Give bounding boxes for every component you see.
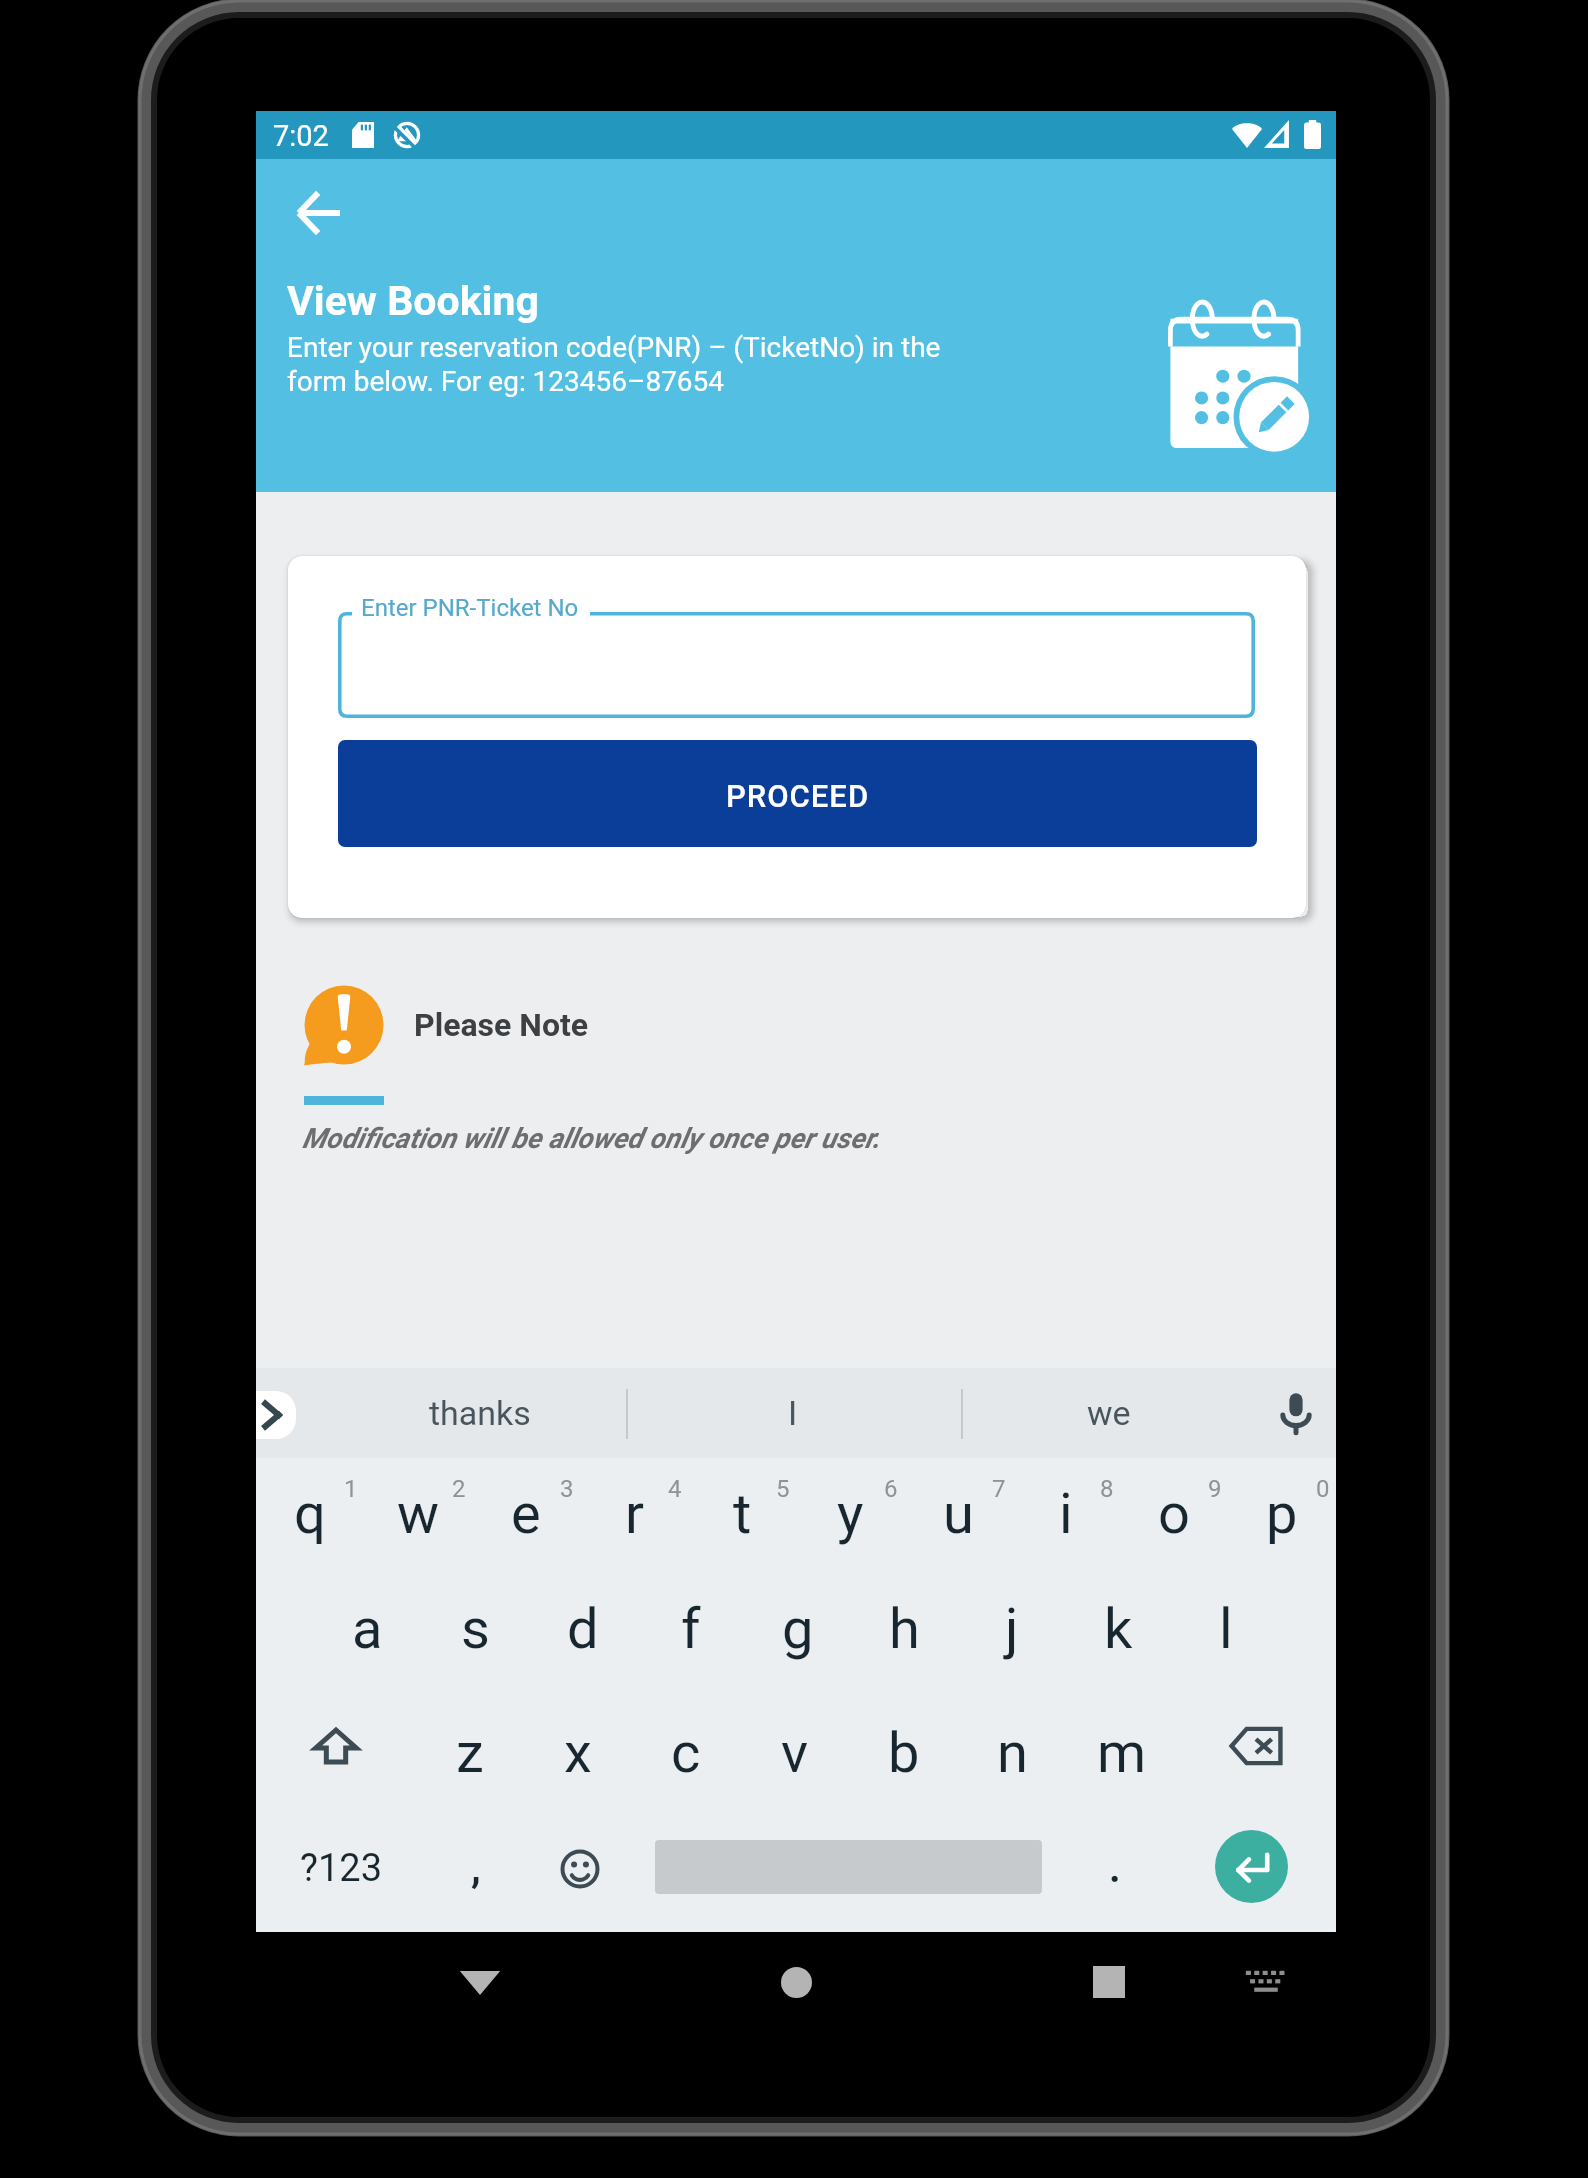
button[interactable]: z	[416, 1688, 524, 1803]
staticText: g	[782, 1596, 814, 1662]
button[interactable]: g	[744, 1573, 851, 1688]
staticText: f	[681, 1596, 701, 1662]
button[interactable]: ,	[426, 1805, 526, 1932]
staticText: i	[1059, 1481, 1073, 1547]
button[interactable]: w	[364, 1458, 472, 1573]
staticText: Enter your reservation code(PNR) – (Tick…	[287, 331, 1147, 398]
staticText: 3	[560, 1475, 574, 1503]
staticText: b	[888, 1720, 920, 1786]
staticText: u	[943, 1481, 974, 1547]
button[interactable]: i	[1012, 1458, 1120, 1573]
staticText: s	[461, 1596, 490, 1662]
button[interactable]: Back	[283, 177, 355, 249]
staticText: e	[511, 1481, 541, 1547]
button[interactable]: we	[963, 1368, 1255, 1458]
button[interactable]: r	[580, 1458, 688, 1573]
button[interactable]: o	[1120, 1458, 1228, 1573]
staticText: I	[788, 1393, 798, 1433]
staticText: 9	[1208, 1475, 1222, 1503]
button[interactable]: d	[529, 1573, 637, 1688]
button[interactable]: x	[524, 1688, 632, 1803]
button[interactable]: ?123	[256, 1805, 426, 1932]
button[interactable]: n	[958, 1688, 1067, 1803]
staticText: 4	[668, 1475, 682, 1503]
staticText: View Booking	[287, 277, 539, 325]
button[interactable]: Backspace	[1176, 1688, 1336, 1803]
staticText: j	[1005, 1596, 1019, 1662]
button[interactable]: j	[958, 1573, 1065, 1688]
staticText: .	[1109, 1845, 1121, 1892]
staticText: 7:02	[273, 119, 329, 153]
staticText: d	[567, 1596, 599, 1662]
button[interactable]: t	[688, 1458, 796, 1573]
staticText: Modification will be allowed only once p…	[302, 1122, 881, 1155]
button[interactable]: v	[740, 1688, 849, 1803]
button[interactable]: p	[1228, 1458, 1336, 1573]
staticText: v	[781, 1720, 809, 1786]
button[interactable]: b	[849, 1688, 958, 1803]
button[interactable]: q	[256, 1458, 364, 1573]
button[interactable]: Enter	[1215, 1830, 1288, 1903]
staticText: h	[889, 1596, 920, 1662]
button[interactable]: Hide keyboard	[1228, 1944, 1304, 2020]
staticText: 8	[1100, 1475, 1114, 1503]
staticText: PROCEED	[726, 778, 870, 814]
button[interactable]: e	[472, 1458, 580, 1573]
button[interactable]: More suggestions	[256, 1391, 296, 1439]
button[interactable]: u	[904, 1458, 1012, 1573]
staticText: 5	[776, 1475, 790, 1503]
button[interactable]: Voice input	[1255, 1368, 1336, 1458]
staticText: thanks	[429, 1393, 531, 1433]
staticText: l	[1219, 1596, 1233, 1662]
staticText: we	[1087, 1393, 1131, 1433]
staticText: w	[397, 1481, 440, 1547]
staticText: 1	[344, 1475, 358, 1503]
staticText: m	[1097, 1720, 1147, 1786]
staticText: k	[1104, 1596, 1133, 1662]
staticText: c	[671, 1720, 701, 1786]
staticText: Enter PNR-Ticket No	[361, 594, 579, 622]
staticText: o	[1158, 1481, 1190, 1547]
staticText: n	[997, 1720, 1028, 1786]
button[interactable]: f	[637, 1573, 744, 1688]
button[interactable]: l	[1172, 1573, 1279, 1688]
staticText: ,	[471, 1845, 481, 1892]
staticText: Please Note	[414, 1006, 589, 1044]
button[interactable]: m	[1067, 1688, 1176, 1803]
button[interactable]: y	[796, 1458, 904, 1573]
staticText: 7	[992, 1475, 1006, 1503]
staticText: a	[352, 1596, 383, 1662]
button[interactable]: Shift	[256, 1688, 416, 1803]
staticText: r	[625, 1481, 644, 1547]
staticText: 0	[1316, 1475, 1330, 1503]
staticText: p	[1266, 1481, 1298, 1547]
button[interactable]: I	[628, 1368, 958, 1458]
button[interactable]: c	[632, 1688, 740, 1803]
staticText: q	[294, 1481, 326, 1547]
staticText: t	[733, 1481, 752, 1547]
button[interactable]: Home	[758, 1944, 834, 2020]
button[interactable]: thanks	[302, 1368, 658, 1458]
button[interactable]: Emoji	[530, 1805, 630, 1932]
button[interactable]: Back	[442, 1944, 518, 2020]
staticText: z	[456, 1720, 484, 1786]
staticText: x	[564, 1720, 592, 1786]
staticText: 2	[452, 1475, 466, 1503]
staticText: 6	[884, 1475, 898, 1503]
button[interactable]: h	[851, 1573, 958, 1688]
button[interactable]: a	[313, 1573, 421, 1688]
staticText: y	[837, 1481, 864, 1547]
button[interactable]: k	[1065, 1573, 1172, 1688]
button[interactable]: s	[421, 1573, 529, 1688]
button[interactable]: PROCEED	[338, 740, 1257, 847]
button[interactable]: Recents	[1071, 1944, 1147, 2020]
button[interactable]: .	[1065, 1805, 1165, 1932]
staticText: ?123	[300, 1846, 383, 1891]
